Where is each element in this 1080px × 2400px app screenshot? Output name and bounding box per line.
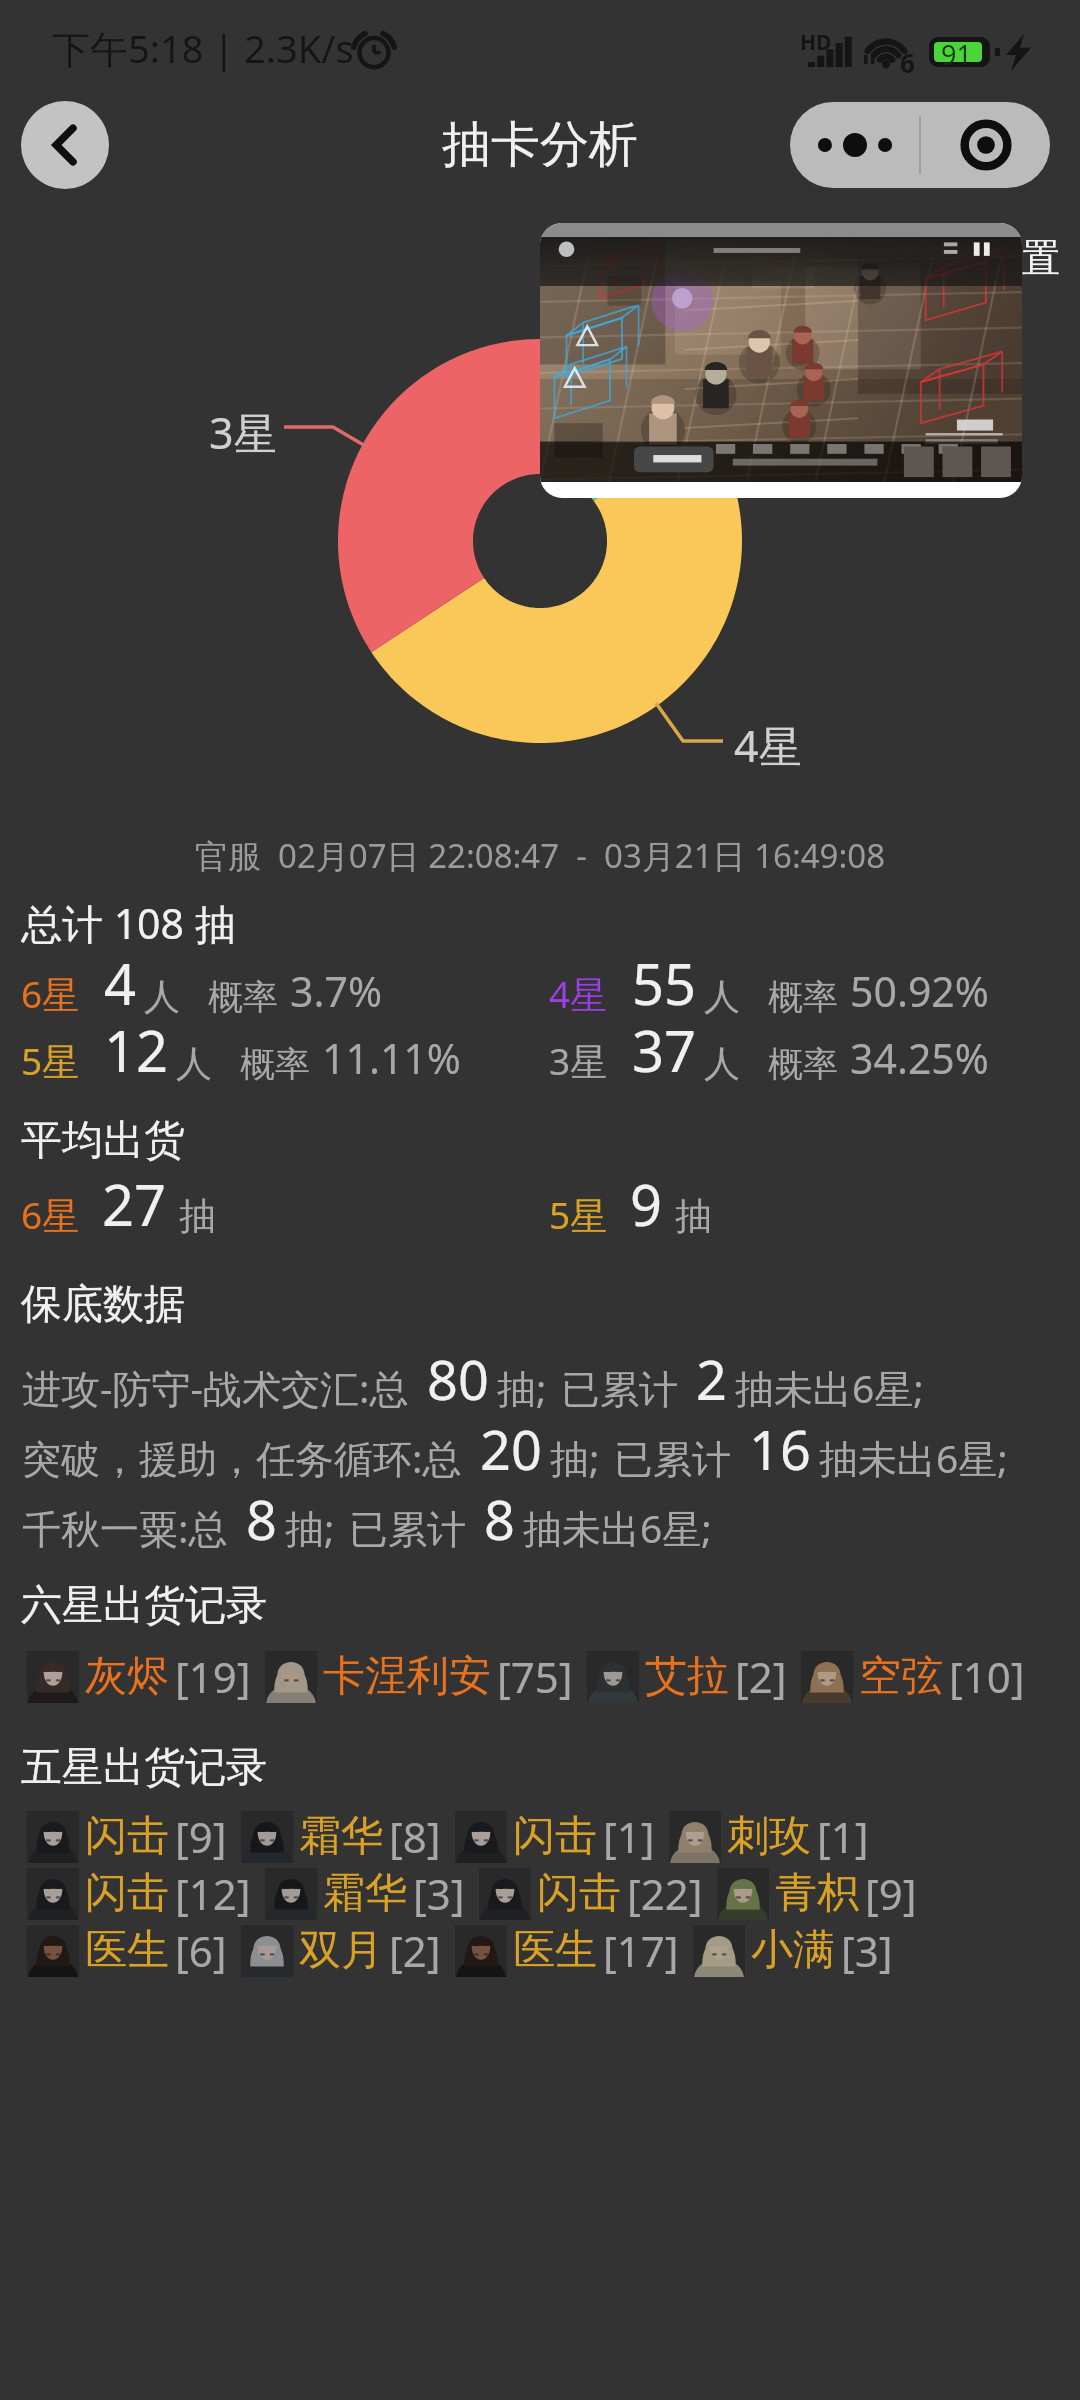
staticText: 设置 (984, 234, 1060, 282)
staticText: 4星 (549, 968, 608, 1019)
staticText: 2 (696, 1342, 727, 1416)
staticText: 闪击 (85, 1810, 169, 1863)
staticText: 人 (704, 1041, 740, 1086)
staticText: [75] (497, 1648, 573, 1705)
button[interactable]: 闪击 (27, 1808, 227, 1865)
button[interactable]: 艾拉 (587, 1648, 787, 1705)
staticText: 34.25% (850, 1030, 989, 1086)
staticText: 人 (144, 974, 180, 1019)
staticText: [1] (817, 1808, 869, 1865)
staticText: 人 (176, 1041, 212, 1086)
staticText: 抽未出6星; (523, 1501, 712, 1554)
staticText: 抽未出6星; (819, 1431, 1008, 1484)
staticText: 91 (941, 36, 972, 73)
button[interactable]: 双月 (241, 1922, 441, 1979)
staticText: 已累计 (561, 1365, 678, 1414)
button[interactable]: Close mini program (921, 102, 1050, 188)
staticText: 人 (704, 974, 740, 1019)
staticText: 闪击 (85, 1867, 169, 1920)
staticText: 闪击 (537, 1867, 621, 1920)
staticText: [3] (413, 1865, 465, 1922)
staticText: 五星出货记录 (21, 1742, 267, 1794)
button[interactable]: 小满 (693, 1922, 893, 1979)
button[interactable]: More options (790, 102, 919, 188)
staticText: 概率 (208, 975, 278, 1019)
button[interactable]: 医生 (27, 1922, 227, 1979)
staticText: [2] (389, 1922, 441, 1979)
staticText: [9] (175, 1808, 227, 1865)
staticText: 刺玫 (727, 1810, 811, 1863)
staticText: 总计 108 抽 (21, 895, 236, 951)
staticText: 抽卡分析 (442, 114, 638, 176)
staticText: [10] (949, 1648, 1025, 1705)
staticText: 3星 (209, 403, 277, 462)
button[interactable]: Back (21, 101, 109, 189)
staticText: 闪击 (513, 1810, 597, 1863)
staticText: 抽; (550, 1431, 600, 1484)
staticText: 6星 (21, 968, 80, 1019)
staticText: [2] (735, 1648, 787, 1705)
button[interactable]: 刺玫 (669, 1808, 869, 1865)
button[interactable]: 霜华 (265, 1865, 465, 1922)
button[interactable]: 卡涅利安 (265, 1648, 573, 1705)
staticText: 11.11% (322, 1030, 461, 1086)
button[interactable]: 霜华 (241, 1808, 441, 1865)
staticText: 8 (246, 1482, 277, 1556)
staticText: 4 (104, 945, 137, 1021)
staticText: 灰烬 (85, 1650, 169, 1703)
staticText: 霜华 (299, 1810, 383, 1863)
staticText: 3星 (549, 1035, 608, 1086)
staticText: 抽 (675, 1193, 712, 1240)
staticText: 进攻-防守-战术交汇:总 (22, 1361, 409, 1414)
staticText: 平均出货 (21, 1115, 185, 1167)
staticText: 5星 (21, 1035, 80, 1086)
staticText: [6] (175, 1922, 227, 1979)
button[interactable]: 医生 (455, 1922, 679, 1979)
staticText: 艾拉 (645, 1650, 729, 1703)
staticText: 医生 (513, 1924, 597, 1977)
staticText: 概率 (768, 1042, 838, 1086)
staticText: 8 (484, 1482, 515, 1556)
button[interactable]: 闪击 (479, 1865, 703, 1922)
staticText: 下午5:18 | 2.3K/s (52, 22, 354, 74)
button[interactable]: 闪击 (27, 1865, 251, 1922)
staticText: 已累计 (349, 1505, 466, 1554)
staticText: [1] (603, 1808, 655, 1865)
staticText: 80 (427, 1342, 489, 1416)
staticText: 9 (630, 1166, 663, 1242)
staticText: [3] (841, 1922, 893, 1979)
staticText: HD (800, 28, 832, 57)
staticText: 六星出货记录 (21, 1580, 267, 1632)
button[interactable]: 闪击 (455, 1808, 655, 1865)
staticText: 4星 (734, 716, 802, 775)
staticText: 抽; (285, 1501, 335, 1554)
staticText: [9] (865, 1865, 917, 1922)
staticText: [8] (389, 1808, 441, 1865)
staticText: 霜华 (323, 1867, 407, 1920)
staticText: [22] (627, 1865, 703, 1922)
staticText: 概率 (768, 975, 838, 1019)
staticText: 20 (480, 1412, 542, 1486)
staticText: 16 (749, 1412, 811, 1486)
staticText: 医生 (85, 1924, 169, 1977)
staticText: 27 (102, 1166, 167, 1242)
staticText: 3.7% (290, 963, 382, 1019)
staticText: 12 (104, 1012, 169, 1088)
staticText: 卡涅利安 (323, 1650, 491, 1703)
staticText: 保底数据 (21, 1279, 185, 1331)
staticText: [12] (175, 1865, 251, 1922)
staticText: 50.92% (850, 963, 989, 1019)
staticText: 概率 (240, 1042, 310, 1086)
button[interactable]: 青枳 (717, 1865, 917, 1922)
button[interactable]: 空弦 (801, 1648, 1025, 1705)
staticText: 双月 (299, 1924, 383, 1977)
staticText: 已累计 (614, 1435, 731, 1484)
staticText: 5星 (549, 1189, 608, 1240)
button[interactable]: Floating game window (540, 223, 1022, 498)
staticText: 抽; (497, 1361, 547, 1414)
button[interactable]: 灰烬 (27, 1648, 251, 1705)
staticText: 官服 02月07日 22:08:47 - 03月21日 16:49:08 (0, 833, 1080, 878)
staticText: 抽 (179, 1193, 216, 1240)
staticText: 青枳 (775, 1867, 859, 1920)
staticText: 6 (900, 45, 915, 80)
